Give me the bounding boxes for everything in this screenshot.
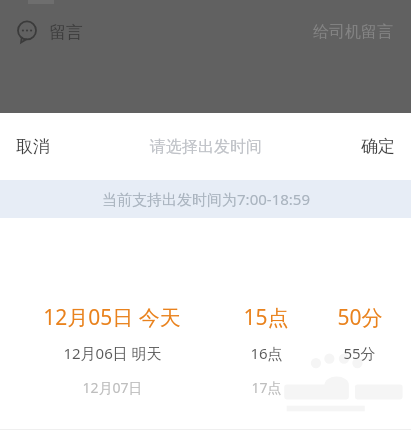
button[interactable]: 12月07日 (0, 370, 411, 404)
staticText: 留言 (49, 22, 83, 43)
other: 留言 (16, 21, 38, 43)
staticText: 取消 (16, 136, 50, 157)
staticText: 当前支持出发时间为7:00-18:59 (102, 189, 310, 209)
staticText: 15点 (243, 303, 289, 332)
staticText: 请选择出发时间 (150, 137, 262, 157)
button[interactable]: 留言 (0, 14, 411, 50)
staticText: 12月05日 今天 (43, 303, 181, 332)
button[interactable]: 确定 (345, 121, 411, 172)
staticText: 50分 (337, 303, 383, 332)
staticText: 16点 (250, 343, 283, 363)
button[interactable]: 12月05日 今天 (0, 298, 411, 336)
staticText: 12月06日 明天 (63, 343, 162, 363)
staticText: 12月07日 (82, 378, 143, 397)
button[interactable]: 12月06日 明天 (0, 336, 411, 370)
button[interactable]: 取消 (0, 121, 66, 172)
staticText: 确定 (361, 136, 395, 157)
staticText: 给司机留言 (313, 22, 393, 42)
staticText: 17点 (251, 378, 282, 397)
staticText: 55分 (343, 343, 376, 363)
